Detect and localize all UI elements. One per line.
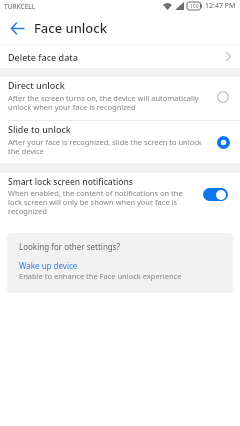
staticText: When enabled, the content of notificatio…: [8, 188, 183, 217]
button[interactable]: [203, 188, 228, 201]
staticText: Delete face data: [8, 51, 226, 63]
button[interactable]: Smart lock screen notifications: [0, 173, 240, 233]
staticText: Looking for other settings?: [19, 241, 121, 252]
staticText: Slide to unlock: [8, 123, 71, 135]
button[interactable]: Wake up device: [19, 260, 78, 271]
button[interactable]: Slide to unlock: [0, 121, 240, 163]
staticText: Direct unlock: [8, 79, 65, 91]
staticText: Enable to enhance the Face unlock experi…: [19, 271, 182, 281]
staticText: After the screen turns on, the device wi…: [8, 93, 199, 113]
staticText: TURKCELL: [4, 2, 36, 11]
staticText: 100: [190, 3, 199, 10]
staticText: Face unlock: [34, 19, 107, 37]
staticText: After your face is recognized, slide the…: [8, 137, 202, 157]
staticText: Smart lock screen notifications: [8, 176, 133, 188]
button[interactable]: Direct unlock: [0, 77, 240, 120]
button[interactable]: Delete face data: [0, 45, 240, 68]
button[interactable]: [11, 23, 24, 34]
staticText: 12:47 PM: [205, 1, 236, 11]
